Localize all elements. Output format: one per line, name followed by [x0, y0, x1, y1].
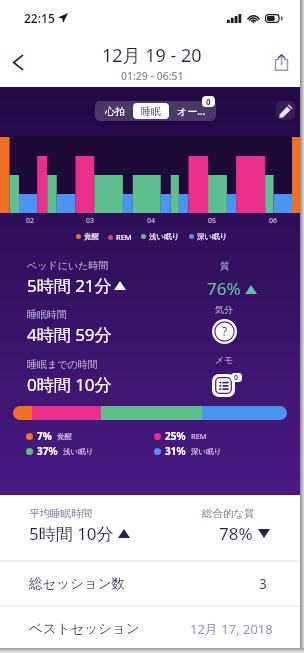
- staticText: 5時間 10分: [29, 522, 114, 545]
- button[interactable]: 総セッション数: [0, 562, 304, 605]
- button[interactable]: 心拍: [97, 103, 133, 119]
- staticText: 37%: [37, 444, 58, 458]
- button[interactable]: 睡眠: [133, 103, 169, 119]
- staticText: 03: [86, 216, 95, 226]
- staticText: 01:29 - 06:51: [121, 69, 184, 83]
- staticText: 25%: [165, 429, 186, 443]
- staticText: 心拍: [105, 105, 125, 118]
- staticText: 02: [26, 216, 35, 226]
- staticText: 5時間 21分: [27, 274, 112, 297]
- staticText: オー…: [177, 104, 206, 118]
- staticText: 総セッション数: [29, 575, 126, 592]
- staticText: 22:15: [24, 10, 55, 26]
- staticText: 0: [206, 96, 211, 107]
- button[interactable]: Back: [0, 42, 38, 82]
- button[interactable]: オー…: [169, 103, 214, 119]
- button[interactable]: Mood: [212, 319, 237, 344]
- staticText: REM: [191, 431, 207, 441]
- staticText: メモ: [215, 354, 234, 365]
- staticText: 4時間 59分: [27, 323, 112, 346]
- staticText: 3: [259, 575, 267, 593]
- staticText: 12月 19 - 20: [102, 43, 202, 68]
- button[interactable]: Notes: [212, 374, 235, 397]
- staticText: 深い眠り: [197, 232, 228, 241]
- staticText: ベストセッション: [29, 620, 140, 637]
- staticText: 気分: [215, 304, 233, 315]
- staticText: 06: [269, 216, 278, 226]
- staticText: 浅い眠り: [149, 232, 180, 241]
- staticText: 05: [208, 216, 217, 226]
- staticText: 76%: [207, 277, 241, 300]
- staticText: ベッドにいた時間: [27, 259, 109, 272]
- staticText: 総合的な質: [202, 507, 255, 520]
- staticText: 深い眠り: [191, 447, 222, 456]
- button[interactable]: ベストセッション: [0, 607, 304, 650]
- staticText: 0時間 10分: [27, 373, 112, 396]
- staticText: 04: [147, 216, 156, 226]
- button[interactable]: Share: [261, 42, 301, 82]
- staticText: 7%: [37, 429, 52, 443]
- staticText: 睡眠: [141, 105, 161, 118]
- staticText: ?: [222, 323, 228, 339]
- button[interactable]: Edit: [276, 101, 295, 120]
- staticText: REM: [116, 232, 132, 242]
- staticText: 睡眠までの時間: [27, 358, 98, 371]
- staticText: 覚醒: [84, 232, 99, 241]
- staticText: 0: [234, 373, 239, 382]
- staticText: 31%: [165, 444, 186, 458]
- staticText: 78%: [219, 522, 253, 545]
- staticText: 睡眠時間: [27, 308, 67, 321]
- button[interactable]: 平均睡眠時間: [0, 495, 304, 560]
- staticText: 質: [220, 260, 229, 271]
- staticText: 覚醒: [57, 432, 72, 441]
- staticText: 12月 17, 2018: [190, 620, 273, 638]
- staticText: 浅い眠り: [63, 447, 94, 456]
- staticText: 平均睡眠時間: [29, 507, 92, 520]
